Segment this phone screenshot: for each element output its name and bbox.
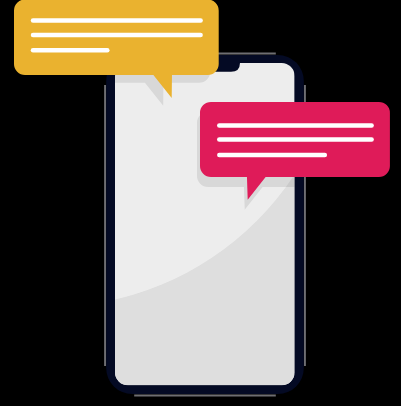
button[interactable]: Chat bubbles on a phone illustration	[0, 0, 401, 406]
